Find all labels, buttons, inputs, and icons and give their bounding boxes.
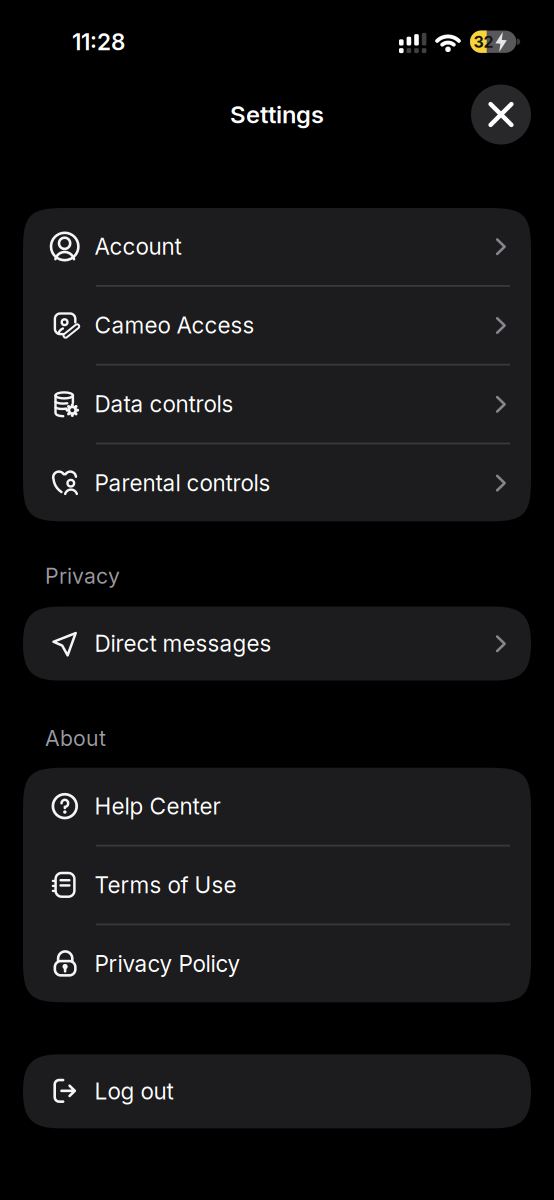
staticText: About [45,726,106,751]
staticText: Privacy Policy [94,950,240,977]
staticText: Terms of Use [94,872,236,898]
button[interactable]: Privacy Policy [23,925,531,1002]
staticText: Direct messages [94,630,271,657]
staticText: Account [94,233,181,260]
staticText: Parental controls [94,469,270,496]
staticText: 32 [473,32,493,51]
button[interactable]: Log out [23,1054,531,1128]
staticText: 11:28 [72,29,125,55]
button[interactable]: Cameo Access [23,287,531,364]
button[interactable]: Account [23,208,531,285]
button[interactable]: Terms of Use [23,846,531,923]
staticText: Log out [94,1078,173,1105]
staticText: Settings [230,100,324,129]
button[interactable]: Help Center [23,768,531,845]
button[interactable]: Direct messages [23,607,531,681]
staticText: Cameo Access [94,312,254,339]
button[interactable]: Data controls [23,366,531,443]
button[interactable]: Close [471,84,531,144]
staticText: Help Center [94,793,220,820]
staticText: Privacy [45,563,120,589]
staticText: Data controls [94,391,233,417]
button[interactable]: Parental controls [23,444,531,521]
